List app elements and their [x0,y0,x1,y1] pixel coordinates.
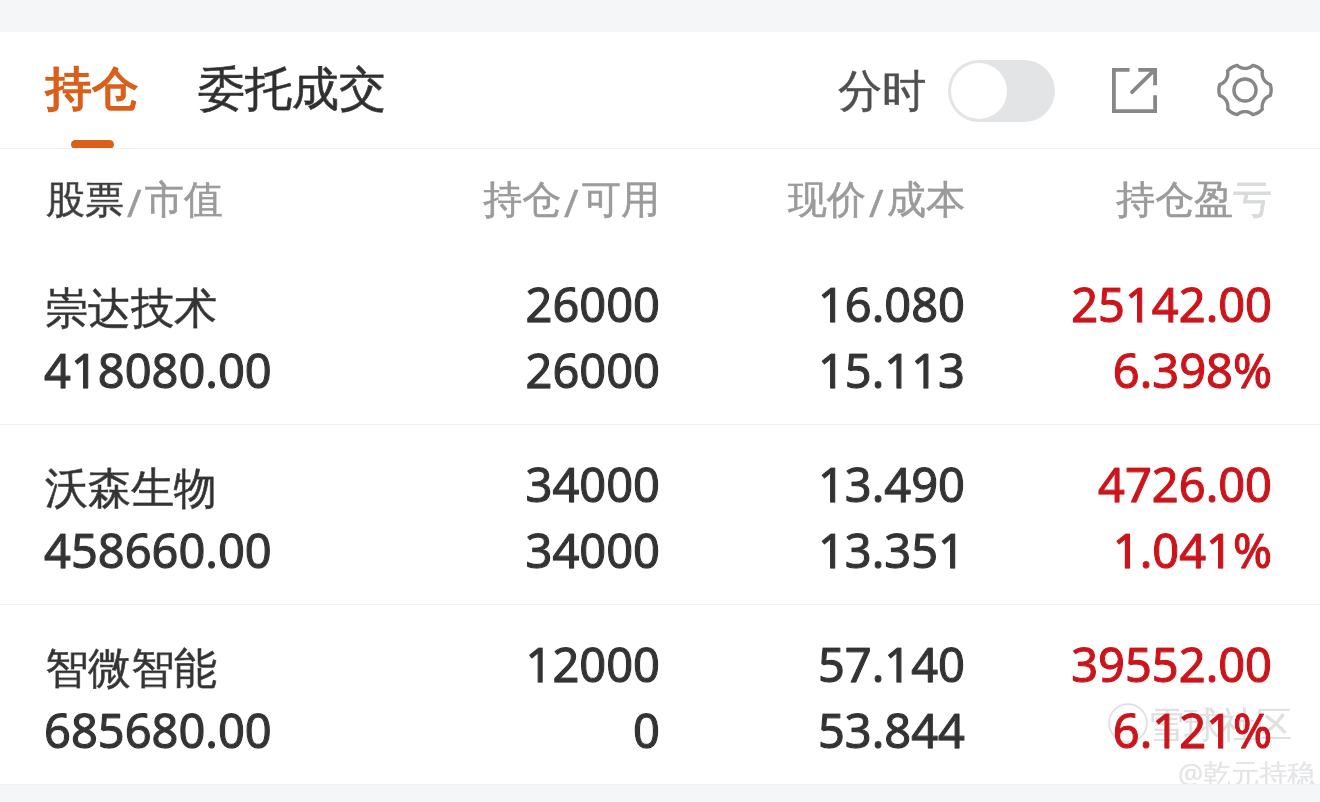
staticText: 委托成交 [198,60,386,119]
staticText: 685680.00 [44,698,272,762]
button[interactable]: 分时 [830,48,1063,134]
staticText: 0 [240,698,660,762]
staticText: / [869,175,884,228]
staticText: / [564,175,579,228]
staticText: 智微智能 [45,642,217,696]
staticText: 26000 [240,338,660,402]
staticText: 458660.00 [44,518,272,582]
staticText: 亏 [1233,175,1272,224]
button[interactable]: 委托成交 [183,48,401,131]
staticText: 股票 [46,175,124,224]
staticText: 4726.00 [852,452,1272,516]
staticText: 39552.00 [852,632,1272,696]
staticText: 亏 [1233,175,1272,224]
staticText: 16.080 [545,272,965,336]
staticText: 57.140 [545,632,965,696]
staticText: 持仓 [45,60,139,119]
staticText: 持仓 [483,175,561,224]
staticText: 25142.00 [852,272,1272,336]
button[interactable]: Open in new window [1100,56,1168,124]
staticText: 418080.00 [44,338,272,402]
staticText: 25142.00 [852,272,1272,336]
staticText: 57.140 [545,632,965,696]
staticText: 26000 [240,272,660,336]
staticText: 现价 [788,175,866,224]
staticText: 15.113 [545,338,965,402]
staticText: 34000 [240,452,660,516]
staticText: 可用 [582,175,660,224]
staticText: @乾元持稳 [1178,754,1316,792]
button[interactable]: 持仓 [30,48,154,131]
staticText: 持仓 [45,60,139,119]
staticText: 13.351 [545,518,965,582]
button[interactable] [0,605,1320,784]
staticText: 沃森生物 [45,462,217,516]
staticText: 13.490 [545,452,965,516]
staticText: 现价 [788,175,866,224]
staticText: 市值 [145,175,223,224]
staticText: 成本 [887,175,965,224]
staticText: 16.080 [545,272,965,336]
staticText: 沃森生物 [45,462,217,516]
staticText: 持仓盈 [1116,175,1233,224]
staticText: 458660.00 [44,518,272,582]
staticText: 成本 [887,175,965,224]
button[interactable] [0,425,1320,604]
staticText: 26000 [240,272,660,336]
staticText: 1.041% [852,518,1272,582]
staticText: 6.121% [852,698,1272,762]
staticText: 持仓盈 [1116,175,1233,224]
staticText: 股票 [46,175,124,224]
staticText: 分时 [838,64,926,119]
staticText: 崇达技术 [45,282,217,336]
staticText: 53.844 [545,698,965,762]
staticText: 26000 [240,338,660,402]
staticText: 12000 [240,632,660,696]
staticText: / [127,175,142,228]
button[interactable] [0,245,1320,424]
staticText: / [869,175,884,228]
staticText: / [127,175,142,228]
staticText: 0 [240,698,660,762]
staticText: 6.398% [852,338,1272,402]
staticText: 智微智能 [45,642,217,696]
staticText: 6.121% [852,698,1272,762]
staticText: 分时 [838,64,926,119]
staticText: 34000 [240,518,660,582]
button[interactable]: Settings [1211,56,1279,124]
staticText: 13.490 [545,452,965,516]
staticText: 39552.00 [852,632,1272,696]
staticText: 34000 [240,452,660,516]
staticText: 崇达技术 [45,282,217,336]
staticText: 雪球社区 [1148,702,1292,747]
staticText: 委托成交 [198,60,386,119]
staticText: 可用 [582,175,660,224]
staticText: 市值 [145,175,223,224]
staticText: / [564,175,579,228]
staticText: 13.351 [545,518,965,582]
staticText: 12000 [240,632,660,696]
staticText: 4726.00 [852,452,1272,516]
staticText: 持仓 [483,175,561,224]
staticText: 418080.00 [44,338,272,402]
staticText: 1.041% [852,518,1272,582]
staticText: 15.113 [545,338,965,402]
staticText: 34000 [240,518,660,582]
staticText: 6.398% [852,338,1272,402]
staticText: 685680.00 [44,698,272,762]
staticText: 53.844 [545,698,965,762]
